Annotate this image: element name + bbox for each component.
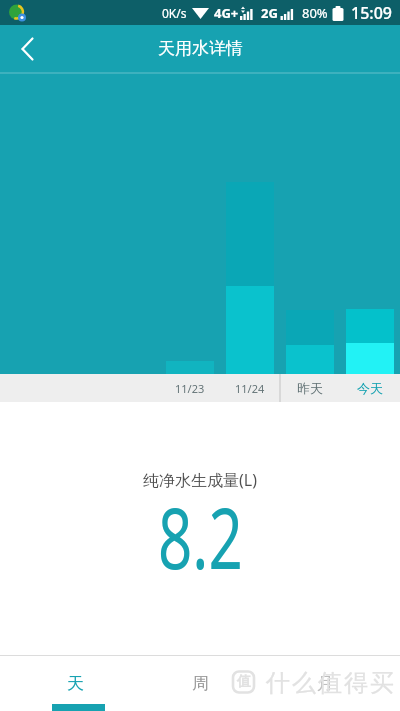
button[interactable]: 天 xyxy=(13,656,138,711)
button[interactable]: 11/23 xyxy=(166,374,214,402)
staticText: 0K/s xyxy=(162,5,187,21)
staticText: 15:09 xyxy=(351,2,392,24)
staticText: 11/24 xyxy=(235,381,265,396)
button[interactable]: 今天 xyxy=(346,374,394,402)
staticText: 2G xyxy=(261,4,278,22)
staticText: 4G+ xyxy=(214,4,239,22)
button[interactable] xyxy=(0,25,56,72)
staticText: 天 xyxy=(67,673,84,694)
button[interactable]: 11/24 xyxy=(226,374,274,402)
staticText: 8.2 xyxy=(158,479,243,593)
staticText: 周 xyxy=(192,673,209,694)
staticText: 值 xyxy=(237,673,251,691)
staticText: 80% xyxy=(302,4,328,22)
button[interactable]: 昨天 xyxy=(286,374,334,402)
button[interactable]: 月 xyxy=(263,656,388,711)
staticText: 11/23 xyxy=(175,381,205,396)
button[interactable]: 周 xyxy=(138,656,263,711)
staticText: 纯净水生成量(L) xyxy=(143,469,257,491)
staticText: 月 xyxy=(317,673,334,694)
staticText: 今天 xyxy=(357,380,383,396)
staticText: 天用水详情 xyxy=(158,38,243,59)
staticText: 昨天 xyxy=(297,380,323,396)
staticText: 什么值得买 xyxy=(265,668,395,696)
